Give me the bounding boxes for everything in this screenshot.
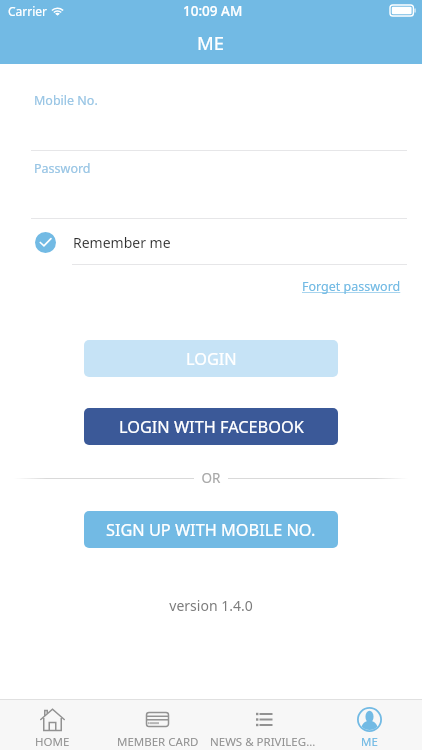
staticText: NEWS & PRIVILEG...: [210, 734, 316, 750]
button[interactable]: Member card: [105, 700, 210, 750]
staticText: Password: [34, 160, 91, 177]
staticText: Forget password: [302, 278, 401, 295]
staticText: version 1.4.0: [0, 596, 422, 615]
staticText: ME: [361, 734, 378, 750]
button[interactable]: LOGIN WITH FACEBOOK: [84, 408, 338, 445]
button[interactable]: Me: [316, 700, 422, 750]
staticText: HOME: [35, 734, 70, 750]
staticText: Carrier: [8, 3, 48, 19]
button[interactable]: News and privileges: [210, 700, 316, 750]
button[interactable]: Home: [0, 700, 105, 750]
staticText: LOGIN WITH FACEBOOK: [119, 416, 304, 438]
button[interactable]: Forget password: [294, 274, 409, 299]
staticText: 10:09 AM: [183, 2, 243, 20]
staticText: Remember me: [73, 233, 171, 252]
staticText: MEMBER CARD: [117, 734, 199, 750]
staticText: LOGIN: [186, 348, 237, 370]
staticText: ME: [197, 30, 225, 55]
button[interactable]: SIGN UP WITH MOBILE NO.: [84, 511, 338, 548]
staticText: Mobile No.: [34, 92, 98, 109]
staticText: OR: [0, 469, 422, 487]
staticText: SIGN UP WITH MOBILE NO.: [106, 519, 316, 541]
button[interactable]: Remember me: [0, 226, 422, 259]
button[interactable]: LOGIN: [84, 340, 338, 377]
